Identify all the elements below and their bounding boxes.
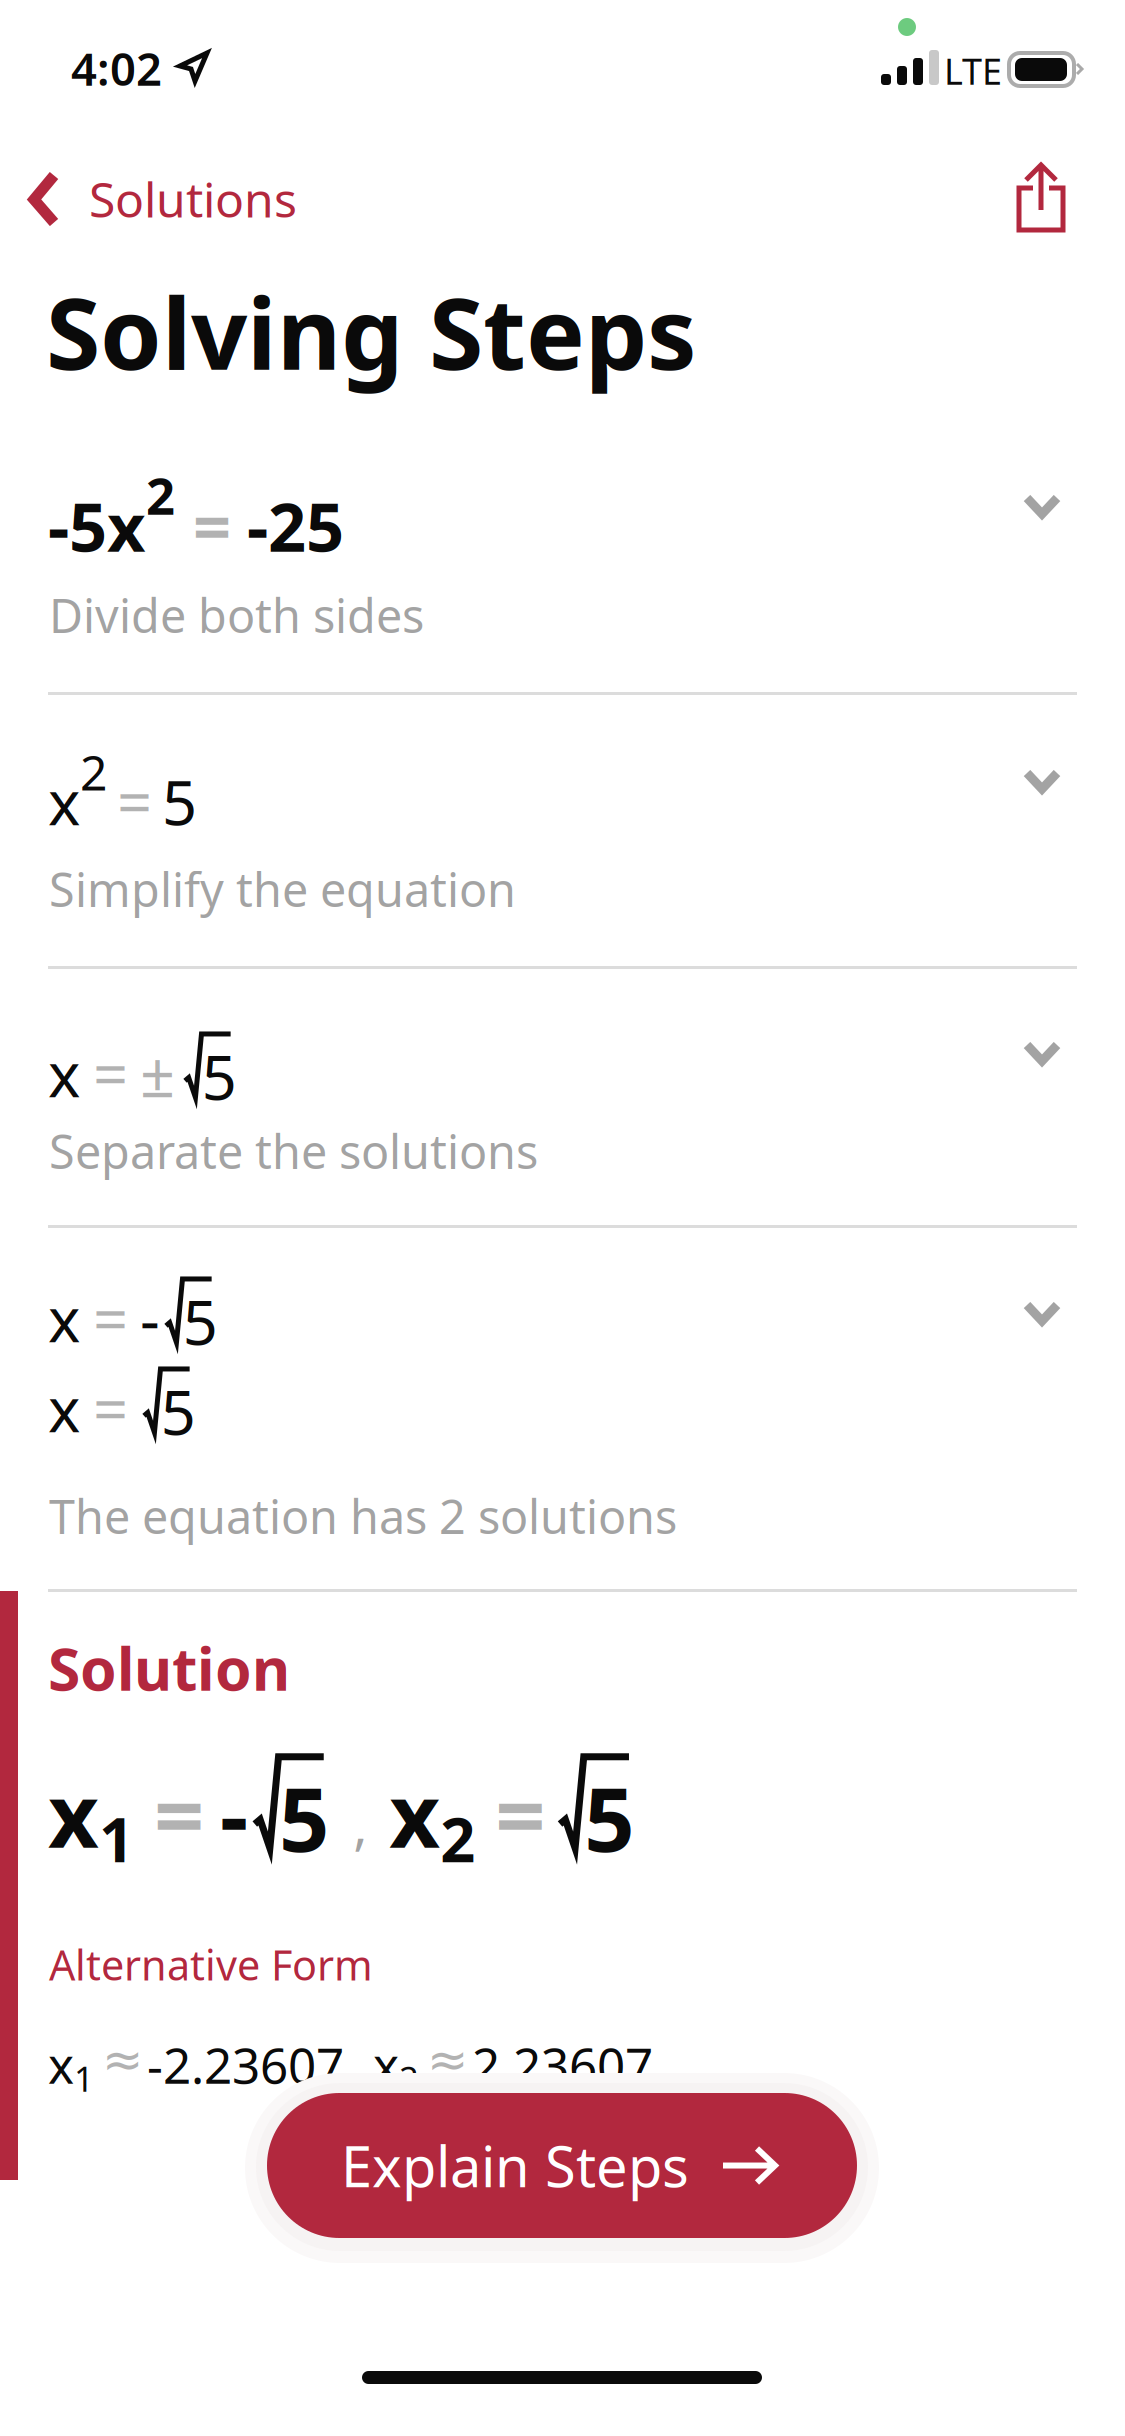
- staticText: -: [220, 1755, 248, 1872]
- staticText: 1: [99, 1798, 134, 1879]
- staticText: 5: [161, 1371, 196, 1452]
- staticText: -25: [247, 481, 344, 570]
- staticText: =: [93, 1368, 128, 1449]
- staticText: =: [93, 1033, 128, 1114]
- staticText: 2: [80, 740, 107, 804]
- button[interactable]: Explain Steps: [267, 2093, 857, 2238]
- staticText: Separate the solutions: [49, 1120, 538, 1182]
- staticText: -2.23607: [147, 2032, 344, 2097]
- staticText: 5: [279, 1759, 329, 1876]
- staticText: ,: [353, 1789, 367, 1859]
- staticText: 2.23607: [472, 2032, 653, 2097]
- staticText: Alternative Form: [49, 1937, 373, 1992]
- staticText: x: [48, 1033, 80, 1114]
- button[interactable]: x: [0, 0, 1125, 1533]
- staticText: x: [373, 2032, 399, 2097]
- staticText: 5: [584, 1759, 634, 1876]
- staticText: =: [495, 1755, 545, 1872]
- staticText: ≈: [102, 2032, 143, 2088]
- staticText: Solutions: [89, 167, 297, 231]
- staticText: x: [389, 1755, 440, 1872]
- staticText: ±: [140, 1033, 175, 1114]
- button[interactable]: Share: [998, 143, 1084, 251]
- staticText: LTE: [944, 47, 1002, 95]
- staticText: 1: [74, 2055, 94, 2101]
- staticText: ≈: [427, 2032, 468, 2088]
- staticText: 2: [399, 2055, 419, 2101]
- staticText: 5: [183, 1281, 218, 1362]
- staticText: Explain Steps: [341, 2128, 689, 2203]
- staticText: x: [48, 1755, 99, 1872]
- staticText: x: [48, 761, 80, 842]
- staticText: Solving Steps: [46, 266, 697, 397]
- staticText: =: [93, 1278, 128, 1359]
- staticText: 4:02: [71, 38, 162, 98]
- staticText: ,: [354, 2047, 363, 2091]
- staticText: 2: [440, 1798, 475, 1879]
- button[interactable]: x: [0, 0, 1125, 906]
- button[interactable]: -5x: [0, 0, 1125, 632]
- staticText: -: [140, 1278, 160, 1359]
- staticText: Simplify the equation: [49, 858, 516, 920]
- staticText: 2: [146, 461, 175, 529]
- staticText: The equation has 2 solutions: [49, 1485, 677, 1547]
- staticText: x: [48, 1368, 80, 1449]
- staticText: 5: [162, 761, 197, 842]
- staticText: x: [48, 1278, 80, 1359]
- staticText: =: [117, 761, 152, 842]
- staticText: Divide both sides: [49, 584, 424, 646]
- button[interactable]: x: [0, 0, 1125, 1168]
- staticText: =: [154, 1755, 204, 1872]
- staticText: x: [48, 2032, 74, 2097]
- button[interactable]: Solutions: [0, 149, 321, 249]
- staticText: =: [193, 481, 231, 570]
- staticText: Solution: [48, 1629, 290, 1707]
- staticText: -5x: [48, 481, 146, 570]
- staticText: 5: [202, 1036, 237, 1117]
